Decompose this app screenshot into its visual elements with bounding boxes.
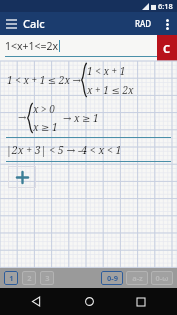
button[interactable]: Home [72,288,106,315]
staticText: 6:18 [158,1,173,11]
button[interactable]: RAD [130,14,157,33]
staticText: 0-ω [155,273,169,283]
button[interactable]: 3 [40,271,54,285]
staticText: 1 < x + 1 ≤ 2x → [7,73,81,87]
staticText: 1<x+1<=2x [5,39,59,53]
button[interactable]: a-z [126,271,148,285]
button[interactable]: 1 [4,271,18,285]
staticText: 3 [45,273,50,283]
button[interactable]: 2 [22,271,36,285]
staticText: RAD [135,18,152,29]
button[interactable]: Recent apps [124,288,158,315]
button[interactable]: 0-ω [151,271,173,285]
button[interactable]: Add new expression [8,166,36,188]
staticText: → [18,112,27,124]
staticText: x + 1 ≤ 2x [87,83,134,97]
staticText: |2x + 3| < 5 → −4 < x < 1 [6,143,122,157]
staticText: 2 [27,273,32,283]
staticText: x ≥ 1 [33,120,58,134]
button[interactable]: Open navigation drawer [0,12,23,35]
button[interactable]: More options [157,14,177,34]
staticText: x > 0 [33,102,55,116]
staticText: 1 [9,273,14,283]
staticText: 1 < x + 1 [87,64,126,78]
button[interactable]: C [157,35,177,61]
staticText: a-z [132,273,143,283]
staticText: → x ≥ 1 [63,111,99,125]
staticText: Calc [23,16,45,31]
staticText: 0-9 [107,273,118,283]
button[interactable]: Back [19,288,53,315]
staticText: C [163,41,171,56]
button[interactable]: 0-9 [101,271,123,285]
